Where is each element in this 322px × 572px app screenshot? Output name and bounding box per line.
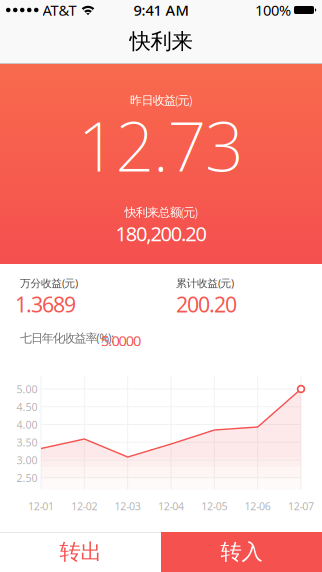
staticText: 2.50 [16,471,37,485]
staticText: 12-05 [201,499,227,513]
staticText: 转入 [220,539,262,565]
staticText: 3.50 [16,435,37,449]
button[interactable]: 转入 [161,532,322,572]
staticText: 12-07 [288,499,314,513]
staticText: 4.50 [16,400,37,414]
staticText: 100% [255,0,291,20]
staticText: 12-06 [245,499,271,513]
staticText: 1.3689 [15,290,76,318]
staticText: 转出 [59,539,101,565]
staticText: 快利来 [129,28,192,55]
staticText: 12-04 [158,499,184,513]
staticText: 万分收益(元) [20,276,78,290]
staticText: 180,200.20 [116,220,206,247]
staticText: 3.00 [16,453,37,467]
staticText: 昨日收益(元) [130,92,192,108]
staticText: 4.00 [16,417,37,432]
staticText: 12-02 [71,499,97,513]
staticText: 12-03 [115,499,141,513]
staticText: 200.20 [176,290,237,318]
staticText: 累计收益(元) [176,276,234,290]
staticText: AT&T [42,0,76,20]
staticText: 9:41 AM [133,0,188,20]
staticText: 5.00 [16,382,37,396]
button[interactable]: 转出 [0,532,161,572]
staticText: 快利来总额(元) [124,204,198,220]
staticText: 七日年化收益率(%): [20,330,114,346]
staticText: 12-01 [28,499,54,513]
staticText: 12.73 [78,100,244,190]
staticText: 5.0000 [101,331,141,350]
